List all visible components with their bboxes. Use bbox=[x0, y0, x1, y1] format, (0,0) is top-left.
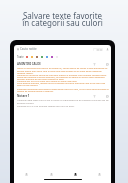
staticText: Noteaza rapid ideile care iti vin in min… bbox=[17, 99, 109, 108]
button[interactable]: Search bbox=[39, 170, 63, 178]
button[interactable]: Profile bbox=[87, 170, 111, 178]
other: Menu bbox=[17, 48, 19, 50]
staticText: Salvare texte favorite în categorii sau … bbox=[22, 10, 103, 28]
button[interactable]: Pin bbox=[93, 95, 96, 98]
button[interactable]: Notare 1 bbox=[14, 93, 111, 109]
staticText: Mergi cu bicicleta prin parcul de langa … bbox=[17, 67, 109, 92]
button[interactable]: Pin bbox=[93, 63, 96, 66]
button[interactable]: Account bbox=[106, 48, 109, 51]
button[interactable]: AMINTIRI CALDE bbox=[14, 61, 111, 93]
button[interactable]: Notes bbox=[63, 170, 87, 178]
staticText: Cauta notite bbox=[20, 47, 37, 51]
staticText: Toate bbox=[17, 55, 24, 59]
staticText: Notare 1 bbox=[17, 94, 30, 98]
button[interactable]: Delete bbox=[106, 63, 109, 66]
button[interactable]: Delete bbox=[106, 95, 109, 98]
button[interactable]: Home bbox=[14, 170, 39, 178]
button[interactable]: Menu bbox=[14, 45, 111, 53]
button[interactable]: View mode bbox=[93, 48, 103, 51]
staticText: AMINTIRI CALDE bbox=[17, 62, 41, 66]
